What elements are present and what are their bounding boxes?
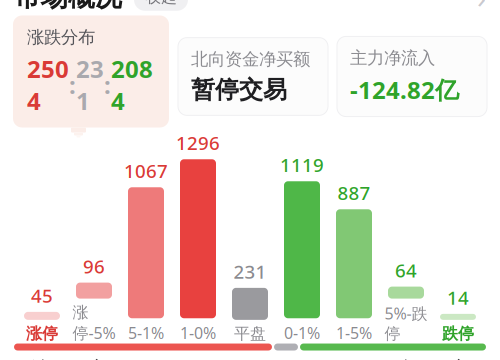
- staticText: 1-0%: [180, 322, 216, 343]
- staticText: :: [69, 69, 76, 101]
- staticText: 跌2084家: [394, 355, 473, 360]
- staticText: -124.82亿: [350, 74, 459, 106]
- staticText: 1-5%: [336, 322, 372, 343]
- staticText: 暂停交易: [191, 75, 287, 104]
- staticText: 1067: [124, 158, 168, 183]
- staticText: 收起: [145, 0, 177, 7]
- staticText: 1296: [176, 130, 220, 155]
- staticText: 涨停: [26, 324, 58, 344]
- staticText: :: [104, 69, 111, 101]
- staticText: 北向资金净买额: [191, 49, 310, 70]
- staticText: 887: [337, 180, 370, 205]
- staticText: 平盘: [234, 324, 266, 344]
- staticText: 跌停: [442, 324, 474, 344]
- staticText: 涨停-5%: [72, 303, 115, 343]
- button[interactable]: More: [477, 0, 486, 16]
- staticText: 涨2504家: [27, 355, 106, 360]
- staticText: 涨跌分布: [27, 26, 95, 48]
- staticText: 5%-跌停: [384, 303, 427, 343]
- button[interactable]: 收起: [134, 0, 188, 11]
- staticText: 1119: [280, 152, 324, 177]
- staticText: 5-1%: [128, 322, 164, 343]
- staticText: 0-1%: [284, 322, 320, 343]
- staticText: 主力净流入: [350, 47, 435, 69]
- staticText: 231: [76, 53, 104, 116]
- staticText: 2084: [111, 53, 153, 116]
- staticText: 45: [31, 283, 53, 308]
- button[interactable]: 主力净流入: [337, 36, 487, 117]
- staticText: ›: [477, 0, 486, 16]
- button[interactable]: 北向资金净买额: [178, 38, 328, 115]
- staticText: 96: [83, 254, 105, 279]
- staticText: 市场概况: [14, 0, 122, 13]
- staticText: 64: [395, 258, 417, 283]
- staticText: 14: [447, 285, 469, 310]
- staticText: 231: [233, 259, 266, 284]
- staticText: 2504: [27, 53, 69, 116]
